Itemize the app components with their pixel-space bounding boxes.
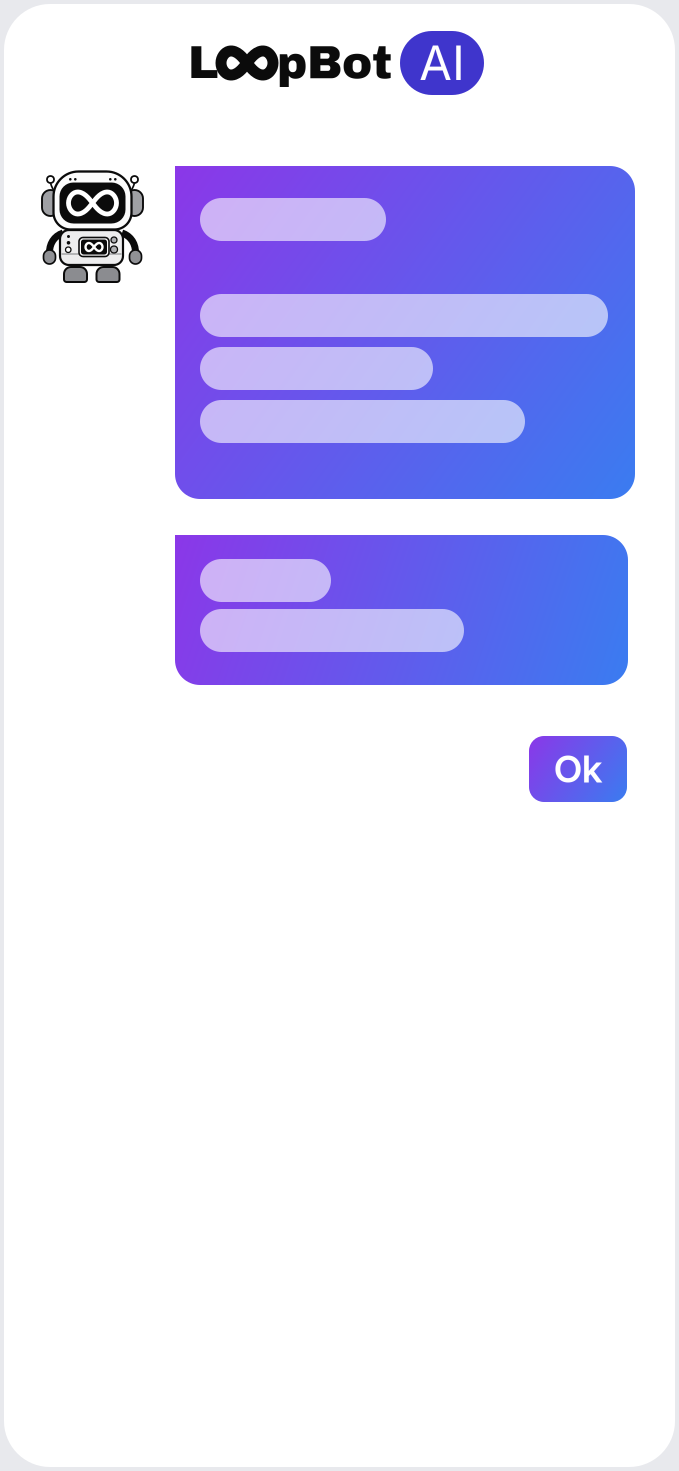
button[interactable]: Ok [529, 736, 627, 802]
staticText: AI [419, 34, 465, 92]
staticText: L [188, 38, 218, 88]
staticText: pBot [277, 38, 392, 88]
staticText: Ok [554, 746, 602, 792]
